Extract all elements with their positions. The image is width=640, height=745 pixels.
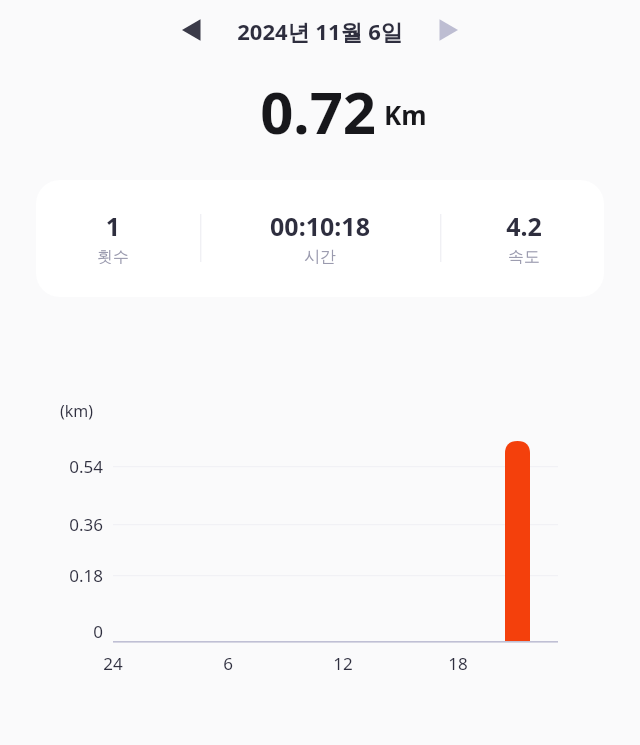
- staticText: 0: [23, 620, 103, 643]
- staticText: 2024년 11월 6일: [220, 16, 420, 46]
- staticText: Km: [384, 97, 484, 132]
- staticText: 12: [303, 652, 383, 675]
- button[interactable]: Previous day: [168, 6, 216, 54]
- staticText: 0.18: [23, 564, 103, 587]
- staticText: 속도: [454, 247, 594, 267]
- staticText: 0.54: [23, 455, 103, 478]
- staticText: 4.2: [454, 209, 594, 243]
- staticText: (km): [60, 400, 140, 422]
- staticText: 1: [43, 209, 183, 243]
- staticText: 24: [73, 652, 153, 675]
- staticText: 0.72: [128, 72, 376, 151]
- button[interactable]: Next day: [424, 6, 472, 54]
- staticText: 시간: [220, 247, 420, 267]
- staticText: 0.36: [23, 513, 103, 536]
- staticText: 18: [418, 652, 498, 675]
- button[interactable]: [36, 180, 604, 297]
- staticText: 00:10:18: [220, 209, 420, 243]
- staticText: 6: [188, 652, 268, 675]
- staticText: 횟수: [43, 247, 183, 267]
